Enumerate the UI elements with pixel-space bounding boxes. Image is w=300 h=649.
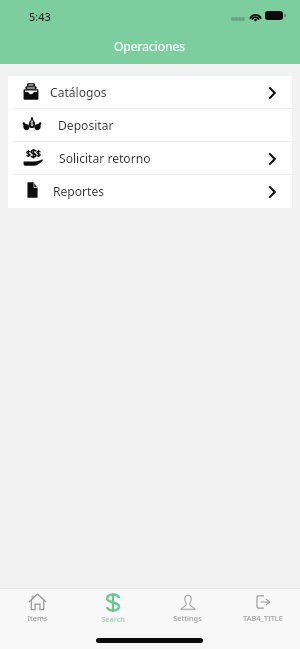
staticText: 5:43 <box>29 9 51 24</box>
button[interactable]: Items <box>0 589 75 623</box>
staticText: Solicitar retorno <box>59 150 151 166</box>
staticText: Depositar <box>58 117 114 133</box>
button[interactable]: Settings <box>150 589 225 623</box>
other: Open <box>268 152 276 166</box>
button[interactable]: Logout <box>225 589 300 623</box>
button[interactable]: Depositar <box>8 109 292 142</box>
button[interactable]: Reportes <box>8 175 292 208</box>
button[interactable]: Catálogos <box>8 76 292 109</box>
staticText: Search <box>101 614 125 624</box>
staticText: Operaciones <box>114 38 186 54</box>
button[interactable]: Solicitar retorno <box>8 142 292 175</box>
other: Open <box>268 185 276 199</box>
staticText: Reportes <box>53 183 105 199</box>
button[interactable]: Search <box>75 589 150 624</box>
staticText: Catálogos <box>50 84 107 100</box>
staticText: Settings <box>173 613 202 623</box>
staticText: Items <box>27 613 48 623</box>
staticText: TAB4_TITLE <box>243 613 283 623</box>
other: Open <box>268 86 276 100</box>
